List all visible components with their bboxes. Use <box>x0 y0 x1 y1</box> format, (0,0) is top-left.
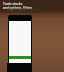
staticText: Trade stocks <box>3 2 23 6</box>
staticText: and options, 0 fees <box>3 6 32 10</box>
